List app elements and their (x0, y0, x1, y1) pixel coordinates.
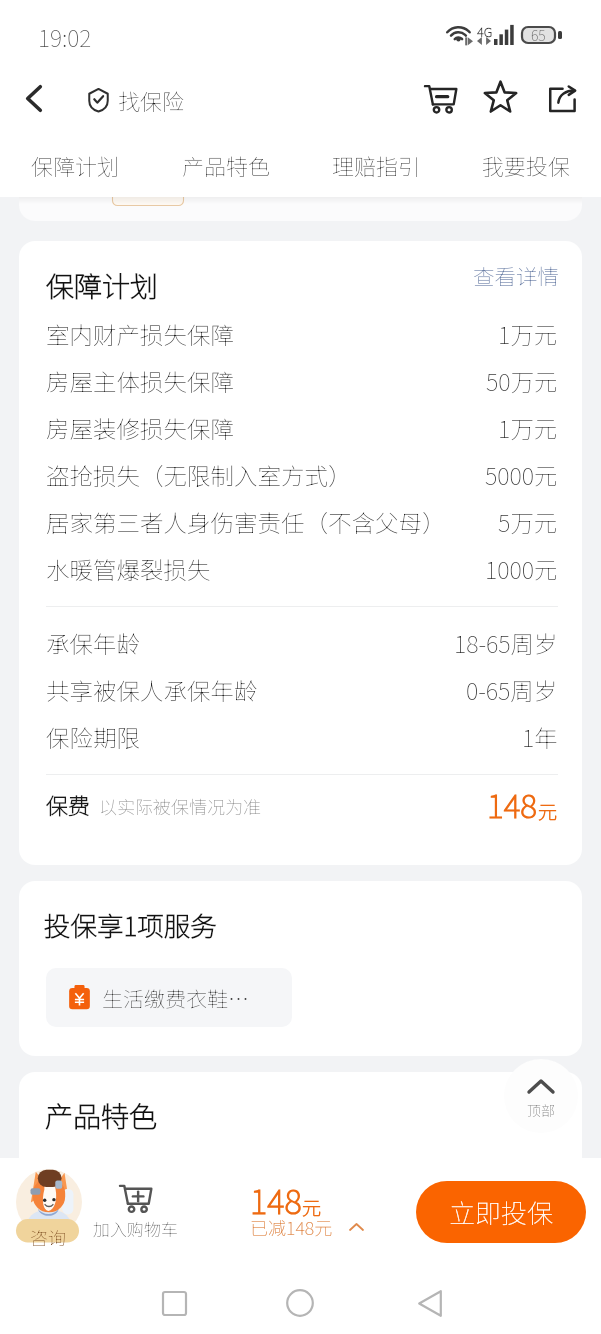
staticText: 房屋装修损失保障 (46, 411, 234, 445)
staticText: 产品特色 (182, 149, 271, 181)
staticText: 1000元 (485, 552, 558, 586)
button[interactable]: Back (406, 1279, 454, 1327)
staticText: 保费 (46, 788, 91, 820)
staticText: 顶部 (527, 1100, 555, 1120)
staticText: 房屋主体损失保障 (46, 364, 234, 398)
staticText: 理赔指引 (332, 149, 421, 181)
staticText: 生活缴费衣鞋… (102, 983, 249, 1013)
staticText: 盗抢损失（无限制入室方式） (46, 458, 352, 492)
staticText: 保险期限 (46, 720, 140, 754)
button[interactable]: Cart (418, 76, 462, 120)
button[interactable]: 找保险 (88, 84, 185, 116)
button[interactable]: 保障计划 (0, 134, 151, 195)
staticText: 立即投保 (449, 1193, 554, 1231)
button[interactable]: 立即投保 (416, 1181, 586, 1243)
button[interactable]: 查看详情 (473, 260, 560, 291)
staticText: 居家第三者人身伤害责任（不含父母） (46, 505, 446, 539)
button[interactable]: Back to top (504, 1059, 578, 1133)
staticText: 1年 (522, 720, 558, 754)
staticText: 承保年龄 (46, 626, 140, 660)
button[interactable]: Back (10, 74, 58, 122)
staticText: 加入购物车 (93, 1216, 178, 1241)
button[interactable]: Consult (16, 1168, 82, 1254)
staticText: 找保险 (118, 84, 185, 116)
staticText: 1万元 (498, 411, 558, 445)
staticText: 保障计划 (31, 149, 120, 181)
staticText: 元 (302, 1193, 322, 1221)
staticText: 水暖管爆裂损失 (46, 552, 211, 586)
staticText: 投保享1项服务 (44, 905, 217, 943)
button[interactable]: 我要投保 (451, 134, 601, 195)
button[interactable]: Recents (150, 1279, 198, 1327)
button[interactable]: 加入购物车 (88, 1174, 183, 1258)
staticText: 产品特色 (45, 1095, 158, 1136)
staticText: 65 (531, 25, 546, 43)
staticText: 室内财产损失保障 (46, 317, 234, 351)
staticText: 元 (538, 797, 558, 825)
button[interactable]: Favorite (478, 75, 522, 119)
staticText: 18-65周岁 (454, 626, 558, 660)
button[interactable]: Home (276, 1279, 324, 1327)
button[interactable]: 理赔指引 (301, 134, 451, 195)
button[interactable]: Share (540, 77, 584, 121)
staticText: 4G (477, 22, 493, 41)
staticText: 148 (250, 1176, 302, 1224)
staticText: 查看详情 (473, 260, 560, 291)
staticText: 5万元 (498, 505, 558, 539)
button[interactable]: 生活缴费衣鞋… (46, 968, 292, 1027)
staticText: 0-65周岁 (466, 673, 558, 707)
button[interactable]: 148 (250, 1176, 380, 1246)
staticText: 19:02 (38, 20, 92, 53)
staticText: 保障计划 (46, 265, 159, 306)
button[interactable]: 产品特色 (151, 134, 301, 195)
staticText: 已减148元 (250, 1214, 333, 1240)
staticText: 148 (487, 781, 538, 827)
staticText: 1万元 (498, 317, 558, 351)
staticText: 以实际被保情况为准 (99, 793, 261, 819)
staticText: 5000元 (485, 458, 558, 492)
staticText: 我要投保 (482, 149, 571, 181)
staticText: 共享被保人承保年龄 (46, 673, 258, 707)
staticText: 咨询 (30, 1224, 66, 1250)
staticText: 50万元 (486, 364, 558, 398)
